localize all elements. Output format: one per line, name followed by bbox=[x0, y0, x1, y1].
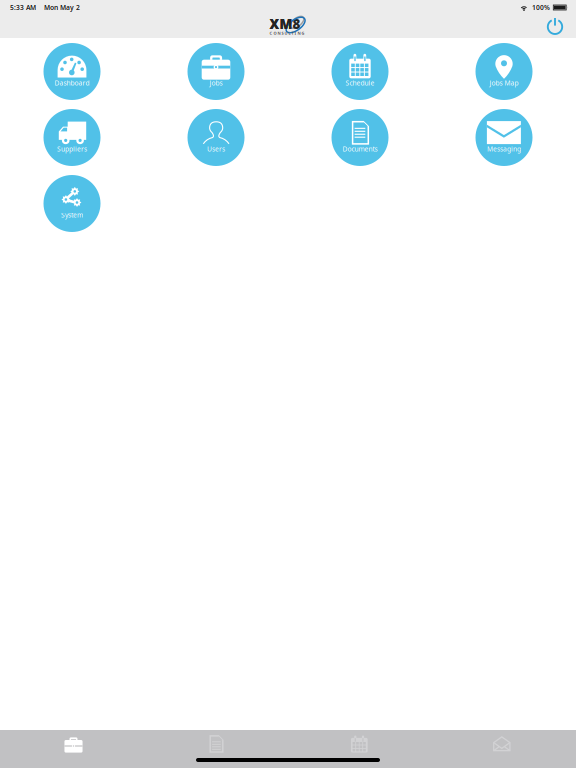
staticText: System bbox=[61, 211, 83, 219]
staticText: 5:33 AM bbox=[10, 3, 36, 12]
staticText: XM bbox=[269, 15, 292, 33]
button[interactable]: Schedule bbox=[288, 733, 432, 755]
button[interactable]: Log out bbox=[542, 15, 568, 37]
button[interactable]: Jobs Map bbox=[475, 43, 532, 100]
button[interactable]: Suppliers bbox=[43, 109, 100, 166]
staticText: Schedule bbox=[345, 79, 374, 87]
staticText: Dashboard bbox=[54, 79, 89, 87]
staticText: Mon May 2 bbox=[44, 3, 80, 12]
staticText: Messaging bbox=[487, 145, 521, 153]
button[interactable]: Schedule bbox=[331, 43, 388, 100]
staticText: Suppliers bbox=[57, 145, 87, 153]
button[interactable]: System bbox=[43, 175, 100, 232]
button[interactable]: Jobs bbox=[0, 733, 144, 755]
button[interactable]: Documents bbox=[331, 109, 388, 166]
staticText: Documents bbox=[342, 145, 377, 153]
staticText: Users bbox=[207, 145, 225, 153]
button[interactable]: Messaging bbox=[475, 109, 532, 166]
staticText: XM8 bbox=[269, 15, 300, 33]
button[interactable]: Dashboard bbox=[43, 43, 100, 100]
button[interactable]: Users bbox=[187, 109, 244, 166]
staticText: Jobs bbox=[209, 79, 222, 87]
staticText: C O N S U L T I N G bbox=[270, 30, 305, 36]
staticText: Jobs Map bbox=[489, 79, 518, 87]
staticText: 100% bbox=[532, 3, 550, 12]
button[interactable]: Jobs bbox=[187, 43, 244, 100]
